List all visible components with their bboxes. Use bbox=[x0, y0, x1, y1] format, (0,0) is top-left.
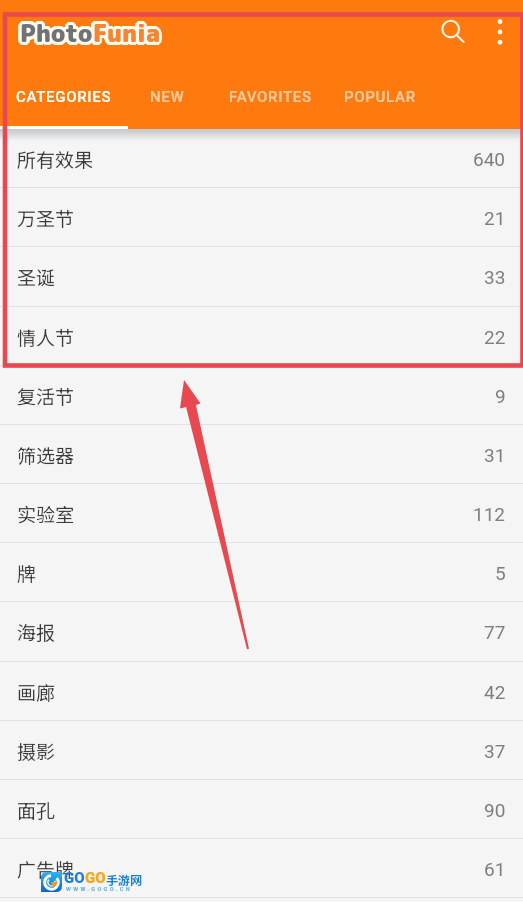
staticText: 640 bbox=[473, 148, 506, 170]
button[interactable]: 海报 bbox=[0, 602, 523, 661]
staticText: Funia bbox=[93, 16, 161, 49]
staticText: WWW.GOGO.CN bbox=[66, 886, 132, 892]
staticText: 所有效果 bbox=[17, 145, 94, 173]
button[interactable]: 牌 bbox=[0, 543, 523, 602]
staticText: 33 bbox=[484, 266, 506, 288]
staticText: PhotoFunia bbox=[18, 18, 158, 51]
staticText: 61 bbox=[484, 858, 506, 880]
staticText: PhotoFunia bbox=[20, 13, 160, 46]
button[interactable]: 复活节 bbox=[0, 366, 523, 425]
staticText: PhotoFunia bbox=[18, 14, 158, 47]
staticText: 画廊 bbox=[17, 678, 56, 706]
staticText: CATEGORIES bbox=[16, 88, 112, 106]
button[interactable]: 万圣节 bbox=[0, 188, 523, 247]
staticText: 万圣节 bbox=[17, 204, 75, 232]
staticText: PhotoFunia bbox=[17, 17, 157, 50]
staticText: 21 bbox=[484, 207, 506, 229]
button[interactable]: 画廊 bbox=[0, 662, 523, 721]
button[interactable]: POPULAR bbox=[325, 65, 435, 129]
staticText: Photo bbox=[20, 16, 93, 49]
staticText: NEW bbox=[150, 88, 185, 106]
button[interactable]: CATEGORIES bbox=[0, 65, 131, 129]
staticText: FAVORITES bbox=[229, 88, 312, 106]
button[interactable]: FAVORITES bbox=[210, 65, 330, 129]
button[interactable]: NEW bbox=[131, 65, 204, 129]
staticText: 42 bbox=[484, 681, 506, 703]
staticText: PhotoFunia bbox=[21, 19, 161, 52]
staticText: 牌 bbox=[17, 559, 37, 587]
staticText: 手游网 bbox=[106, 871, 143, 888]
staticText: PhotoFunia bbox=[22, 18, 162, 51]
button[interactable]: 摄影 bbox=[0, 721, 523, 780]
button[interactable]: 情人节 bbox=[0, 307, 523, 366]
button[interactable]: 所有效果 bbox=[0, 129, 523, 188]
staticText: PhotoFunia bbox=[22, 14, 162, 47]
staticText: 5 bbox=[495, 562, 506, 584]
staticText: 9 bbox=[495, 385, 506, 407]
staticText: PhotoFunia bbox=[23, 15, 163, 48]
staticText: POPULAR bbox=[344, 88, 416, 106]
staticText: 112 bbox=[473, 503, 506, 525]
button[interactable]: Search bbox=[430, 9, 476, 55]
staticText: 筛选器 bbox=[17, 441, 75, 469]
staticText: 圣诞 bbox=[17, 263, 56, 291]
button[interactable]: 实验室 bbox=[0, 484, 523, 543]
staticText: GO bbox=[85, 869, 106, 887]
staticText: 31 bbox=[484, 444, 506, 466]
staticText: GO bbox=[64, 869, 85, 887]
staticText: PhotoFunia bbox=[19, 13, 159, 46]
staticText: 90 bbox=[484, 799, 506, 821]
button[interactable]: 面孔 bbox=[0, 780, 523, 839]
button[interactable]: 筛选器 bbox=[0, 425, 523, 484]
button[interactable]: 广告牌 bbox=[0, 839, 523, 898]
staticText: PhotoFunia bbox=[23, 16, 163, 49]
staticText: PhotoFunia bbox=[23, 17, 163, 50]
staticText: 海报 bbox=[17, 618, 56, 646]
button[interactable]: More options bbox=[477, 9, 523, 55]
staticText: 面孔 bbox=[17, 796, 56, 824]
staticText: 37 bbox=[484, 740, 506, 762]
staticText: PhotoFunia bbox=[21, 13, 161, 46]
staticText: 实验室 bbox=[17, 500, 75, 528]
staticText: PhotoFunia bbox=[19, 19, 159, 52]
staticText: 摄影 bbox=[17, 737, 56, 765]
staticText: 情人节 bbox=[17, 323, 75, 351]
staticText: 22 bbox=[484, 326, 506, 348]
staticText: 77 bbox=[484, 621, 506, 643]
staticText: 广告牌 bbox=[17, 855, 75, 883]
staticText: PhotoFunia bbox=[17, 16, 157, 49]
staticText: 复活节 bbox=[17, 382, 75, 410]
staticText: PhotoFunia bbox=[17, 15, 157, 48]
staticText: PhotoFunia bbox=[20, 19, 160, 52]
button[interactable]: 圣诞 bbox=[0, 247, 523, 306]
